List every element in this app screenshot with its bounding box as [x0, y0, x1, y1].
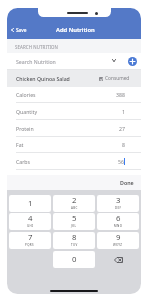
staticText: 8 — [122, 141, 125, 148]
staticText: 4 — [28, 213, 33, 224]
staticText: SEARCH NUTRITION — [15, 44, 59, 50]
staticText: 6 — [116, 213, 121, 224]
staticText: Consumed — [105, 75, 130, 82]
staticText: MNO — [114, 224, 123, 228]
staticText: ABC — [71, 206, 78, 210]
button[interactable]: Quantity — [7, 103, 141, 120]
button[interactable]: Done — [120, 179, 134, 186]
staticText: 7 — [28, 232, 33, 243]
staticText: 1 — [122, 108, 125, 115]
staticText: 388 — [116, 91, 125, 98]
staticText: Add Nutrition — [56, 26, 95, 34]
staticText: 2 — [72, 195, 77, 206]
staticText: Quantity — [16, 108, 38, 115]
button[interactable]: 9 — [97, 232, 139, 249]
staticText: 1 — [28, 198, 33, 209]
staticText: 0 — [72, 254, 77, 265]
button[interactable]: 5 — [53, 213, 95, 230]
staticText: GHI — [27, 224, 34, 228]
button[interactable]: Protein — [7, 120, 141, 137]
button[interactable]: Carbs — [7, 153, 141, 170]
button[interactable]: Search Nutrition — [7, 53, 141, 70]
staticText: Chicken Quinoa Salad — [16, 75, 70, 82]
staticText: 9 — [116, 232, 121, 243]
staticText: Protein — [16, 125, 34, 132]
staticText: 27 — [119, 125, 125, 132]
staticText: Search Nutrition — [16, 58, 56, 65]
button[interactable]: Save — [11, 27, 27, 33]
staticText: Calories — [16, 91, 36, 98]
staticText: Carbs — [16, 158, 31, 165]
button[interactable]: Calories — [7, 86, 141, 103]
staticText: 3 — [116, 195, 121, 206]
button[interactable]: 7 — [9, 232, 51, 249]
staticText: 56 — [118, 158, 124, 165]
button[interactable]: 6 — [97, 213, 139, 230]
staticText: 8 — [72, 232, 77, 243]
button[interactable]: Chicken Quinoa Salad — [7, 70, 141, 87]
button[interactable]: Expand — [110, 57, 117, 64]
staticText: PQRS — [25, 243, 35, 247]
staticText: JKL — [71, 224, 77, 228]
staticText: 5 — [72, 213, 77, 224]
button[interactable]: 0 — [53, 251, 95, 268]
button[interactable]: 4 — [9, 213, 51, 230]
staticText: Save — [16, 27, 27, 33]
button[interactable]: Delete — [97, 251, 139, 268]
button[interactable]: 3 — [97, 195, 139, 212]
button[interactable]: Add — [128, 57, 137, 66]
staticText: DEF — [115, 206, 122, 210]
button[interactable]: 1 — [9, 195, 51, 212]
button[interactable]: 8 — [53, 232, 95, 249]
button[interactable]: 2 — [53, 195, 95, 212]
staticText: TUV — [71, 243, 78, 247]
button[interactable]: Fat — [7, 136, 141, 153]
staticText: WXYZ — [113, 243, 123, 247]
staticText: Fat — [16, 141, 24, 148]
